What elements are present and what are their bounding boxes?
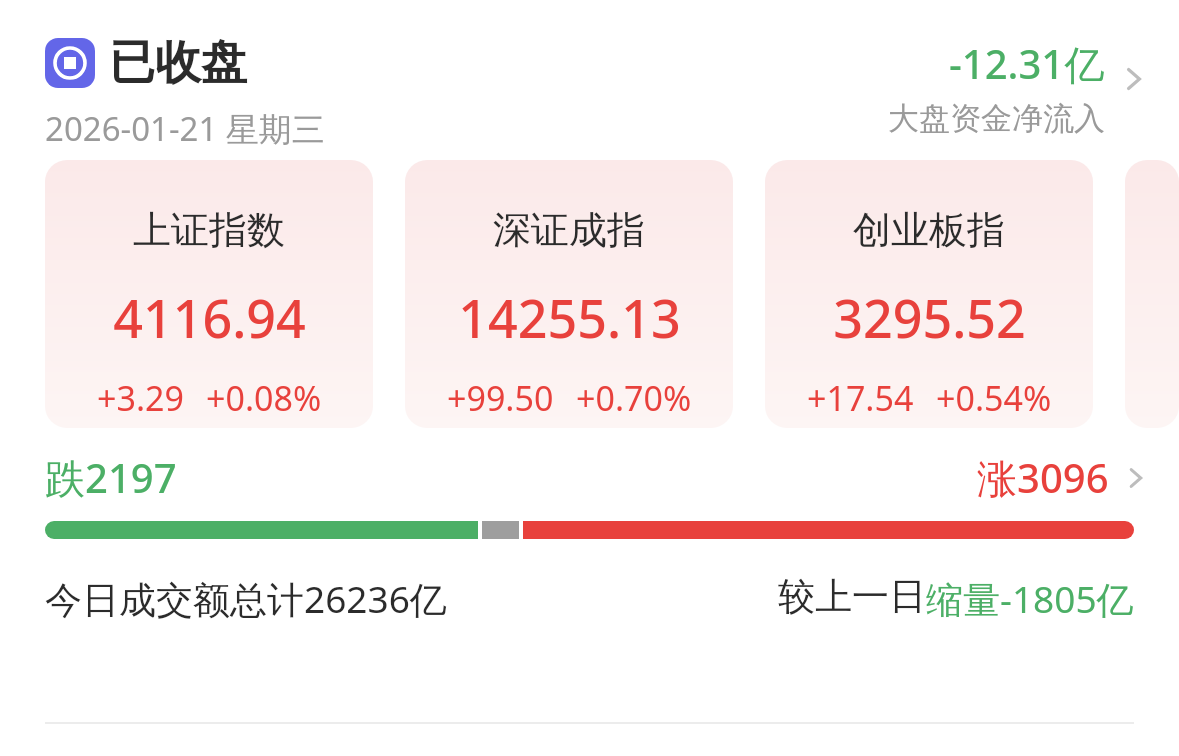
- staticText: +99.50: [447, 375, 554, 421]
- button[interactable]: 创业板指: [765, 160, 1093, 428]
- staticText: 较上一日: [778, 573, 926, 620]
- button[interactable]: Market closed: [45, 34, 325, 151]
- button[interactable]: 深证成指: [405, 160, 733, 428]
- staticText: 大盘资金净流入: [888, 99, 1105, 138]
- staticText: 3295.52: [833, 282, 1026, 353]
- button[interactable]: 跌2197: [45, 450, 1151, 505]
- staticText: 涨3096: [977, 450, 1109, 505]
- staticText: 14255.13: [458, 282, 681, 353]
- staticText: +0.54%: [936, 375, 1052, 421]
- staticText: 跌2197: [45, 450, 177, 505]
- staticText: +0.70%: [576, 375, 692, 421]
- staticText: +17.54: [807, 375, 914, 421]
- staticText: 上证指数: [133, 206, 285, 254]
- staticText: 创业板指: [853, 206, 1005, 254]
- staticText: 4116.94: [113, 282, 306, 353]
- staticText: +3.29: [97, 375, 184, 421]
- staticText: 已收盘: [109, 34, 247, 92]
- staticText: 2026-01-21 星期三: [45, 106, 325, 151]
- button[interactable]: [1125, 160, 1179, 428]
- other: Market closed: [45, 38, 95, 88]
- staticText: 深证成指: [493, 206, 645, 254]
- button[interactable]: -12.31亿: [888, 36, 1151, 138]
- staticText: +0.08%: [206, 375, 322, 421]
- staticText: 今日成交额总计26236亿: [45, 573, 447, 624]
- staticText: 缩量-1805亿: [926, 573, 1134, 624]
- button[interactable]: 上证指数: [45, 160, 373, 428]
- staticText: -12.31亿: [949, 36, 1105, 91]
